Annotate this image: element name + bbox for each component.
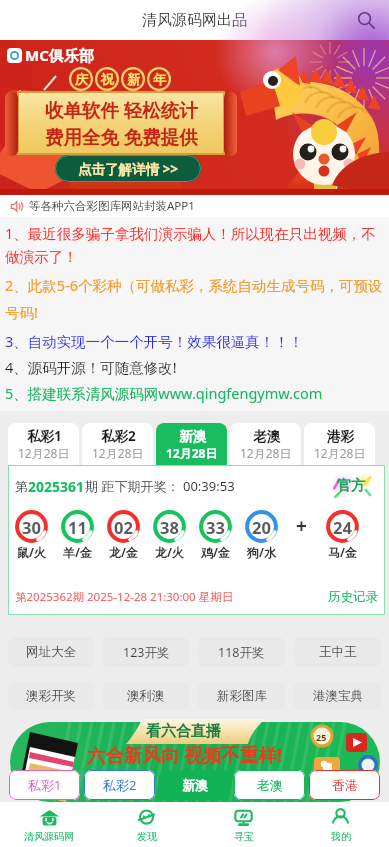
staticText: 六合新风向 视频不重样! bbox=[87, 742, 283, 767]
button[interactable]: 新彩图库 bbox=[198, 681, 285, 711]
staticText: 寻宝 bbox=[234, 830, 254, 843]
staticText: 38 bbox=[160, 516, 179, 538]
staticText: 123开奖 bbox=[123, 644, 170, 661]
staticText: 期 距下期开奖： bbox=[85, 477, 180, 495]
staticText: 3、自动实现一个一个开号！效果很逼真！！！ bbox=[5, 331, 304, 351]
staticText: 4、源码开源！可随意修改! bbox=[5, 357, 177, 377]
staticText: 祝 bbox=[101, 71, 114, 87]
staticText: 年 bbox=[153, 71, 166, 87]
button[interactable]: 123开奖 bbox=[103, 637, 189, 667]
staticText: 02 bbox=[114, 516, 133, 538]
staticText: 清风源码网出品 bbox=[142, 11, 247, 30]
staticText: 12月28日 bbox=[18, 445, 70, 461]
button[interactable]: 点击了解详情 >> bbox=[55, 155, 201, 182]
staticText: 20 bbox=[252, 516, 271, 538]
staticText: 12月28日 bbox=[314, 445, 366, 461]
staticText: 清风源码网 bbox=[24, 830, 74, 843]
staticText: 12月28日 bbox=[240, 445, 292, 461]
staticText: 私彩1 bbox=[28, 776, 62, 794]
staticText: 11 bbox=[68, 516, 87, 538]
button[interactable]: 私彩1 bbox=[9, 770, 80, 800]
staticText: 1、最近很多骗子拿我们演示骗人！所以现在只出视频，不做演示了！ bbox=[5, 223, 385, 266]
staticText: 羊/金 bbox=[63, 544, 92, 560]
staticText: 5、搭建联系清风源码网www.qingfengymw.com bbox=[5, 383, 323, 403]
staticText: 费用全免 免费提供 bbox=[45, 124, 198, 149]
staticText: 马/金 bbox=[328, 544, 357, 560]
staticText: 龙/金 bbox=[109, 544, 138, 560]
staticText: 2025361 bbox=[28, 477, 85, 496]
staticText: 118开奖 bbox=[218, 644, 265, 661]
staticText: 网址大全 bbox=[26, 644, 76, 660]
staticText: + bbox=[296, 513, 307, 539]
staticText: 香港 bbox=[332, 777, 358, 793]
button[interactable]: 网址大全 bbox=[8, 637, 94, 667]
staticText: 12月28日 bbox=[166, 445, 218, 461]
staticText: 看六合直播 bbox=[146, 722, 221, 741]
staticText: 私彩2 bbox=[101, 427, 136, 445]
staticText: 新彩图库 bbox=[217, 688, 267, 704]
button[interactable]: 澳彩开奖 bbox=[8, 681, 94, 711]
staticText: 港彩 bbox=[327, 428, 354, 445]
staticText: 私彩1 bbox=[27, 427, 62, 445]
button[interactable]: 私彩2 bbox=[82, 423, 153, 465]
staticText: 狗/水 bbox=[247, 544, 276, 560]
staticText: 第 bbox=[15, 478, 28, 494]
staticText: 新澳 bbox=[182, 777, 208, 793]
staticText: 收单软件 轻松统计 bbox=[45, 97, 198, 122]
staticText: 历史记录 bbox=[328, 589, 378, 605]
staticText: 新 bbox=[127, 71, 140, 87]
staticText: 澳彩开奖 bbox=[26, 688, 76, 704]
staticText: 老澳 bbox=[253, 428, 280, 445]
staticText: 点击了解详情 >> bbox=[78, 160, 178, 178]
staticText: 30 bbox=[22, 516, 41, 538]
staticText: 港澳宝典 bbox=[313, 688, 363, 704]
staticText: 我的 bbox=[331, 830, 351, 843]
staticText: 庆 bbox=[75, 71, 88, 87]
button[interactable]: 港澳宝典 bbox=[294, 681, 381, 711]
button[interactable]: 寻宝 bbox=[195, 802, 292, 847]
staticText: 官方 bbox=[337, 477, 365, 495]
staticText: 2、此款5-6个彩种（可做私彩，系统自动生成号码，可预设号码! bbox=[5, 275, 385, 322]
button[interactable]: 我的 bbox=[292, 802, 389, 847]
button[interactable]: 历史记录 bbox=[328, 589, 378, 605]
button[interactable]: 老澳 bbox=[234, 770, 305, 800]
staticText: 25 bbox=[316, 731, 327, 743]
staticText: 等各种六合彩图库网站封装APP1 bbox=[29, 198, 195, 214]
staticText: 第2025362期 2025-12-28 21:30:00 星期日 bbox=[15, 589, 234, 605]
button[interactable]: 私彩2 bbox=[84, 770, 155, 800]
button[interactable]: Search bbox=[349, 3, 383, 37]
button[interactable]: 私彩1 bbox=[8, 423, 79, 465]
button[interactable]: 王中王 bbox=[294, 637, 381, 667]
staticText: 私彩2 bbox=[103, 776, 137, 794]
button[interactable]: 澳利澳 bbox=[103, 681, 189, 711]
staticText: 新澳 bbox=[179, 428, 206, 445]
staticText: 王中王 bbox=[319, 644, 357, 660]
button[interactable]: 发现 bbox=[98, 802, 195, 847]
button[interactable]: 清风源码网 bbox=[0, 802, 98, 847]
staticText: 老澳 bbox=[257, 777, 283, 793]
staticText: 澳利澳 bbox=[127, 688, 165, 704]
button[interactable]: 新澳 bbox=[156, 423, 227, 465]
staticText: 33 bbox=[206, 516, 225, 538]
staticText: 24 bbox=[333, 516, 352, 538]
staticText: 发现 bbox=[137, 830, 157, 843]
button[interactable]: 118开奖 bbox=[198, 637, 285, 667]
button[interactable]: 新澳 bbox=[159, 770, 230, 800]
staticText: 12月28日 bbox=[92, 445, 144, 461]
staticText: 龙/火 bbox=[155, 544, 184, 560]
staticText: MC俱乐部 bbox=[25, 45, 94, 65]
button[interactable]: 香港 bbox=[309, 770, 380, 800]
button[interactable]: 老澳 bbox=[230, 423, 301, 465]
staticText: 鸡/金 bbox=[201, 544, 230, 560]
staticText: 00:39:53 bbox=[183, 477, 235, 495]
staticText: 鼠/火 bbox=[17, 544, 46, 560]
button[interactable]: 港彩 bbox=[304, 423, 375, 465]
